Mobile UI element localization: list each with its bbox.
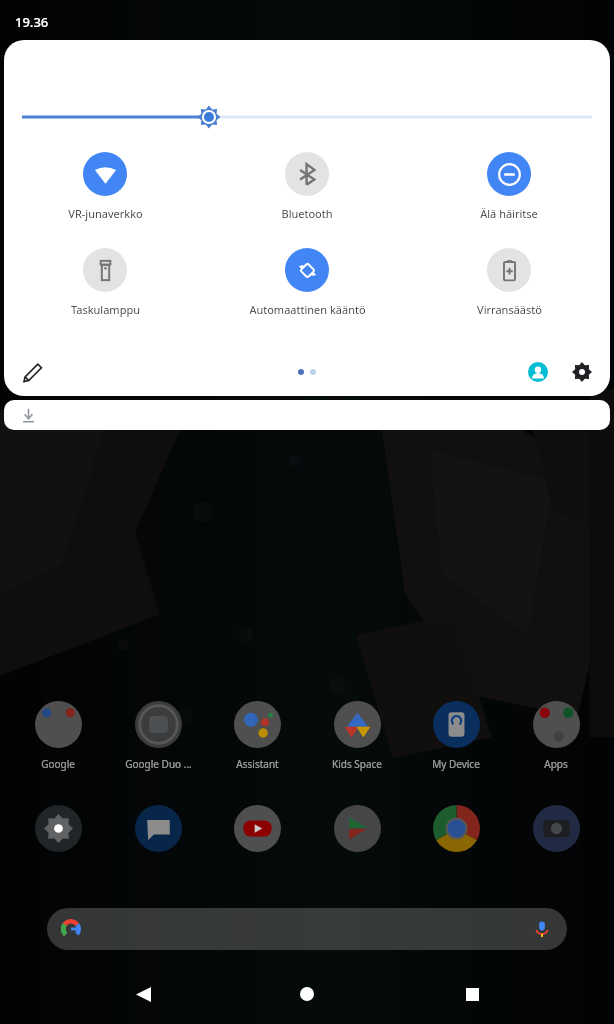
staticText: Kids Space: [332, 757, 382, 771]
button[interactable]: Google search: [47, 908, 567, 950]
staticText: Virransäästö: [477, 302, 542, 317]
button[interactable]: Home: [285, 972, 329, 1016]
button[interactable]: Download notification: [4, 400, 610, 430]
button[interactable]: Recents: [450, 972, 494, 1016]
staticText: VR-junaverkko: [68, 206, 143, 221]
button[interactable]: Assistant: [219, 701, 295, 771]
button[interactable]: [319, 805, 395, 852]
button[interactable]: Settings: [562, 352, 602, 392]
button[interactable]: [219, 805, 295, 852]
button[interactable]: Apps: [518, 701, 594, 771]
staticText: Taskulamppu: [71, 302, 140, 317]
staticText: 19.36: [15, 13, 49, 31]
staticText: Google: [41, 757, 75, 771]
staticText: Apps: [544, 757, 568, 771]
button[interactable]: Taskulamppu: [4, 248, 206, 317]
button[interactable]: Virransäästö: [408, 248, 610, 317]
staticText: Google Duo ...: [125, 757, 192, 771]
staticText: Automaattinen kääntö: [249, 302, 366, 317]
button[interactable]: Google Duo ...: [120, 701, 196, 771]
button[interactable]: Kids Space: [319, 701, 395, 771]
staticText: My Device: [432, 757, 480, 771]
button[interactable]: User: [518, 352, 558, 392]
button[interactable]: Älä häiritse: [408, 152, 610, 221]
button[interactable]: [120, 805, 196, 852]
button[interactable]: Edit tiles: [12, 352, 52, 392]
button[interactable]: Bluetooth: [206, 152, 408, 221]
staticText: Assistant: [236, 757, 279, 771]
staticText: Älä häiritse: [480, 206, 538, 221]
button[interactable]: Automaattinen kääntö: [206, 248, 408, 317]
staticText: Bluetooth: [281, 206, 333, 221]
button[interactable]: Brightness: [4, 40, 610, 130]
button[interactable]: VR-junaverkko: [4, 152, 206, 221]
button[interactable]: My Device: [418, 701, 494, 771]
button[interactable]: [418, 805, 494, 852]
button[interactable]: [518, 805, 594, 852]
button[interactable]: [20, 805, 96, 852]
button[interactable]: Google: [20, 701, 96, 771]
button[interactable]: Back: [121, 972, 165, 1016]
